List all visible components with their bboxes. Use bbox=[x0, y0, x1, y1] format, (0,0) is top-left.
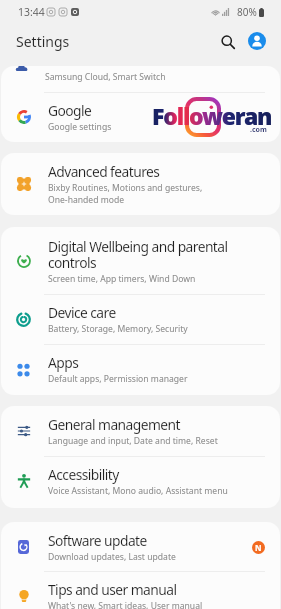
staticText: .com bbox=[250, 125, 267, 135]
staticText: Voice Assistant, Mono audio, Assistant m… bbox=[48, 485, 228, 497]
button[interactable]: Advanced features bbox=[1, 153, 280, 215]
button[interactable]: Accessibility bbox=[1, 456, 280, 506]
staticText: Tips and user manual bbox=[48, 580, 177, 599]
staticText: Digital Wellbeing and parental controls bbox=[48, 237, 228, 272]
button[interactable]: Tips and user manual bbox=[1, 571, 280, 609]
staticText: 13:44 bbox=[18, 5, 45, 19]
staticText: What's new, Smart ideas, User manual bbox=[48, 600, 203, 609]
button[interactable]: Digital Wellbeing and parental controls bbox=[1, 227, 280, 294]
staticText: Battery, Storage, Memory, Security bbox=[48, 323, 188, 335]
staticText: 80% bbox=[237, 5, 257, 19]
button[interactable]: Account bbox=[248, 32, 266, 50]
button[interactable]: Device care bbox=[1, 294, 280, 344]
staticText: N bbox=[255, 542, 262, 553]
button[interactable]: Apps bbox=[1, 344, 280, 394]
staticText: Software update bbox=[48, 531, 147, 550]
staticText: Accessibility bbox=[48, 465, 119, 484]
staticText: Apps bbox=[48, 353, 79, 372]
button[interactable]: Google bbox=[1, 92, 280, 142]
staticText: Download updates, Last update bbox=[48, 551, 176, 563]
staticText: Samsung Cloud, Smart Switch bbox=[45, 71, 166, 83]
button[interactable]: Software update bbox=[1, 522, 280, 572]
staticText: Advanced features bbox=[48, 162, 160, 181]
staticText: Screen time, App timers, Wind Down bbox=[48, 273, 196, 285]
staticText: Settings bbox=[16, 32, 70, 51]
staticText: Device care bbox=[48, 303, 116, 322]
staticText: General management bbox=[48, 415, 180, 434]
button[interactable]: Search bbox=[217, 31, 239, 53]
staticText: Default apps, Permission manager bbox=[48, 373, 188, 385]
staticText: Language and input, Date and time, Reset bbox=[48, 435, 218, 447]
staticText: Google bbox=[48, 101, 92, 120]
staticText: Google settings bbox=[48, 121, 112, 133]
staticText: Followeran bbox=[152, 100, 272, 131]
staticText: Bixby Routines, Motions and gestures, On… bbox=[48, 182, 203, 206]
button[interactable]: General management bbox=[1, 406, 280, 456]
